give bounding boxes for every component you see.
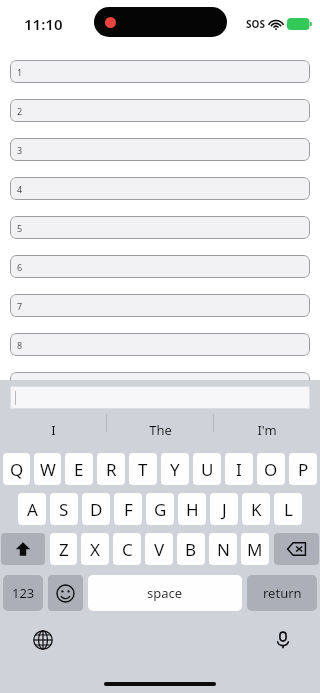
button[interactable]: V (145, 533, 173, 565)
button[interactable]: C (113, 533, 141, 565)
staticText: return (263, 584, 302, 602)
button[interactable]: Dictate (268, 625, 298, 655)
button[interactable]: K (242, 493, 270, 525)
button[interactable]: The (107, 414, 213, 446)
button[interactable]: Y (161, 453, 189, 485)
staticText: Q (10, 458, 24, 481)
button[interactable]: F (114, 493, 142, 525)
button[interactable]: R (97, 453, 125, 485)
staticText: D (90, 498, 103, 521)
staticText: L (284, 498, 293, 521)
button[interactable]: T (129, 453, 157, 485)
button[interactable]: 2 (10, 99, 310, 122)
staticText: 4 (17, 183, 23, 195)
button[interactable]: O (257, 453, 285, 485)
staticText: 7 (17, 300, 23, 312)
staticText: I (236, 458, 242, 481)
button[interactable]: E (65, 453, 93, 485)
button[interactable]: 9 (10, 372, 310, 395)
button[interactable]: S (50, 493, 78, 525)
staticText: K (251, 498, 262, 521)
staticText: O (264, 458, 278, 481)
button[interactable]: U (193, 453, 221, 485)
staticText: 123 (12, 584, 35, 602)
staticText: I (51, 421, 56, 439)
button[interactable]: 5 (10, 216, 310, 239)
button[interactable]: G (146, 493, 174, 525)
staticText: X (90, 538, 100, 561)
button[interactable]: return (247, 575, 317, 611)
staticText: I'm (257, 421, 277, 439)
button[interactable]: Change keyboard language (28, 625, 58, 655)
button[interactable]: I'm (214, 414, 320, 446)
staticText: space (147, 584, 183, 602)
staticText: M (247, 538, 263, 561)
button[interactable]: B (177, 533, 205, 565)
staticText: F (124, 498, 133, 521)
button[interactable]: D (82, 493, 110, 525)
button[interactable]: 7 (10, 294, 310, 317)
staticText: 11:10 (24, 14, 63, 34)
button[interactable]: 123 (3, 575, 43, 611)
staticText: T (138, 458, 148, 481)
staticText: A (27, 498, 38, 521)
button[interactable]: 3 (10, 138, 310, 161)
staticText: 3 (17, 144, 23, 156)
staticText: R (106, 458, 117, 481)
button[interactable]: H (178, 493, 206, 525)
staticText: Y (170, 458, 180, 481)
button[interactable]: I (0, 414, 106, 446)
staticText: G (154, 498, 167, 521)
button[interactable]: I (225, 453, 253, 485)
button[interactable]: X (81, 533, 109, 565)
staticText: 8 (17, 339, 23, 351)
button[interactable]: M (241, 533, 269, 565)
staticText: 1 (17, 66, 23, 78)
button[interactable]: Delete (274, 533, 319, 565)
staticText: P (298, 458, 309, 481)
button[interactable]: J (210, 493, 238, 525)
staticText: 9 (17, 378, 23, 390)
button[interactable]: L (274, 493, 302, 525)
staticText: N (217, 538, 230, 561)
staticText: 5 (17, 222, 23, 234)
staticText: U (201, 458, 214, 481)
button[interactable]: Emoji (48, 575, 83, 611)
staticText: SOS (246, 17, 265, 31)
button[interactable]: P (289, 453, 317, 485)
staticText: C (122, 538, 133, 561)
button[interactable]: Q (3, 453, 30, 485)
staticText: 6 (17, 261, 23, 273)
button[interactable] (10, 386, 310, 409)
staticText: Z (59, 538, 69, 561)
button[interactable]: A (18, 493, 46, 525)
button[interactable]: Z (50, 533, 77, 565)
button[interactable]: space (88, 575, 242, 611)
button[interactable]: 1 (10, 60, 310, 83)
button[interactable]: 6 (10, 255, 310, 278)
staticText: J (222, 498, 227, 521)
button[interactable]: N (209, 533, 237, 565)
staticText: B (185, 538, 197, 561)
staticText: E (74, 458, 84, 481)
staticText: 2 (17, 105, 23, 117)
button[interactable]: Shift (1, 533, 45, 565)
button[interactable]: 4 (10, 177, 310, 200)
button[interactable]: W (34, 453, 61, 485)
staticText: V (154, 538, 165, 561)
staticText: W (40, 458, 56, 481)
staticText: H (186, 498, 199, 521)
staticText: The (149, 421, 172, 439)
staticText: S (59, 498, 69, 521)
button[interactable]: 8 (10, 333, 310, 356)
